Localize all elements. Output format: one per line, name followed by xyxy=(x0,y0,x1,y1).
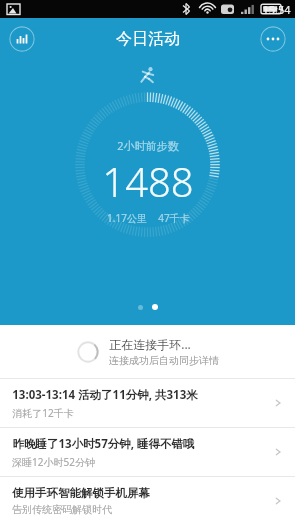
staticText: 1.17公里 xyxy=(107,211,147,225)
staticText: 47千卡 xyxy=(158,211,190,225)
staticText: 深睡12小时52分钟 xyxy=(12,455,95,469)
staticText: 正在连接手环... xyxy=(109,336,191,352)
staticText: 使用手环智能解锁手机屏幕 xyxy=(12,486,150,500)
staticText: 告别传统密码解锁时代 xyxy=(12,503,112,516)
button[interactable]: 正在连接手环... xyxy=(0,325,295,378)
staticText: 15:54 xyxy=(262,2,291,17)
staticText: 2小时前步数 xyxy=(117,138,179,153)
staticText: 今日活动 xyxy=(116,29,180,49)
button[interactable]: 昨晚睡了13小时57分钟, 睡得不错哦 xyxy=(0,428,295,476)
staticText: 连接成功后自动同步详情 xyxy=(109,354,219,367)
button[interactable]: More options xyxy=(260,26,286,52)
staticText: 消耗了12千卡 xyxy=(12,406,74,420)
staticText: 1488 xyxy=(102,154,194,208)
staticText: 13:03-13:14 活动了11分钟, 共313米 xyxy=(12,387,198,403)
button[interactable]: 使用手环智能解锁手机屏幕 xyxy=(0,477,295,524)
button[interactable]: 13:03-13:14 活动了11分钟, 共313米 xyxy=(0,379,295,427)
button[interactable]: Statistics xyxy=(9,26,35,52)
staticText: 昨晚睡了13小时57分钟, 睡得不错哦 xyxy=(12,436,195,452)
